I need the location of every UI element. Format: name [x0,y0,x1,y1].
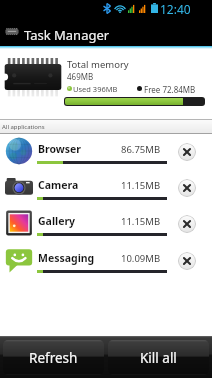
staticText: Messaging [38,251,95,265]
staticText: Used 396MB [73,84,118,94]
staticText: 11.15MB [121,215,161,228]
staticText: Camera [38,178,79,192]
button[interactable]: Refresh [3,340,104,375]
staticText: All applications [2,123,45,131]
staticText: 11.15MB [121,179,161,192]
staticText: Kill all [140,349,177,367]
staticText: Task Manager [24,26,110,44]
staticText: 86.75MB [121,143,161,156]
button[interactable]: Browser [0,136,212,172]
staticText: Gallery [38,214,76,228]
button[interactable]: Stop Browser [178,143,196,161]
staticText: Free 72.84MB [144,84,196,95]
button[interactable]: Kill all [108,340,209,375]
staticText: 10.09MB [121,252,161,265]
button[interactable]: Stop Camera [178,179,196,197]
staticText: 469MB [67,71,94,82]
button[interactable]: Camera [0,172,212,208]
button[interactable]: Messaging [0,245,212,281]
button[interactable]: Gallery [0,208,212,244]
staticText: Refresh [29,349,78,367]
staticText: Total memory [67,58,129,71]
button[interactable]: Stop Messaging [178,252,196,270]
staticText: 12:40 [160,1,191,17]
button[interactable]: Stop Gallery [178,215,196,233]
staticText: Browser [38,142,82,156]
